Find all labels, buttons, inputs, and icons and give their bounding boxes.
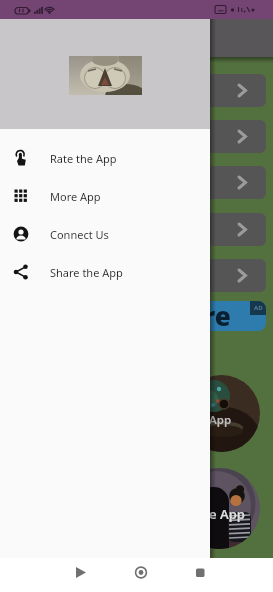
staticText: e App [209,505,245,523]
staticText: More App [50,189,101,204]
staticText: Connect Us [50,227,109,242]
button[interactable] [7,74,266,107]
staticText: re [203,301,231,328]
button[interactable] [0,558,91,592]
button[interactable] [7,213,266,246]
staticText: Share the App [50,265,123,280]
button[interactable]: Connect Us [0,215,210,253]
button[interactable] [7,166,266,199]
button[interactable]: re [7,301,266,331]
staticText: AD [254,304,263,312]
button[interactable] [91,558,182,592]
staticText: Rate the App [50,151,117,166]
button[interactable]: e App [179,468,260,549]
button[interactable] [182,558,273,592]
button[interactable]: Rate the App [0,139,210,177]
button[interactable]: Share the App [0,253,210,291]
button[interactable]: More App [0,177,210,215]
button[interactable] [7,120,266,153]
staticText: App [209,412,232,428]
button[interactable]: App [183,375,260,452]
button[interactable] [7,259,266,292]
